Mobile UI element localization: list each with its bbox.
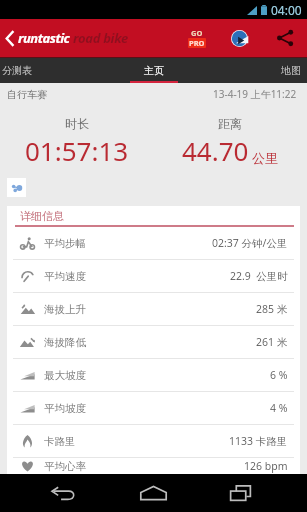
button[interactable]: Share [272,25,298,51]
staticText: 4 % [270,401,288,415]
staticText: 时长 [65,116,89,131]
staticText: 22.9 公里时 [230,269,288,283]
button[interactable]: Home [131,474,175,512]
staticText: GO [191,28,203,38]
staticText: 04:00 [271,2,302,18]
staticText: 平均步幅 [44,237,86,250]
staticText: 6 % [270,368,288,382]
button[interactable]: 平均坡度 [7,392,300,424]
button[interactable]: 卡路里 [7,425,300,457]
button[interactable]: 海拔降低 [7,326,300,358]
staticText: 分测表 [2,64,32,77]
staticText: 平均速度 [44,270,86,283]
button[interactable]: Share activity [7,178,26,197]
staticText: road bike [73,29,128,47]
button[interactable]: 平均速度 [7,260,300,292]
button[interactable]: 平均步幅 [7,227,300,259]
staticText: 最大坡度 [44,369,86,382]
button[interactable]: 分测表 [0,57,85,83]
staticText: 详细信息 [20,209,64,223]
staticText: 海拔降低 [44,336,86,349]
button[interactable]: Back [41,474,85,512]
staticText: 海拔上升 [44,303,86,316]
button[interactable]: 最大坡度 [7,359,300,391]
staticText: 02:37 分钟/公里 [212,236,288,250]
button[interactable]: Runtastic logo [226,25,252,51]
staticText: 平均坡度 [44,402,86,415]
staticText: 13-4-19 上午11:22 [213,87,297,101]
button[interactable]: 海拔上升 [7,293,300,325]
staticText: 01:57:13 [25,133,129,168]
button[interactable]: Recents [218,474,262,512]
staticText: 261 米 [256,335,288,349]
staticText: 平均心率 [44,460,86,473]
staticText: 距离 [218,116,242,131]
staticText: 285 米 [256,302,288,316]
staticText: 44.70 [182,133,249,168]
staticText: 公里 [252,150,278,166]
staticText: PRO [189,38,205,48]
button[interactable]: 平均心率 [7,458,300,474]
button[interactable]: Go Pro [186,28,208,48]
button[interactable]: 主页 [85,57,222,83]
staticText: 主页 [144,64,164,77]
staticText: 地图 [281,64,301,77]
staticText: runtastic [18,29,70,47]
staticText: 1133 卡路里 [229,434,288,448]
button[interactable]: Back [0,19,18,57]
staticText: 126 bpm [244,459,288,473]
staticText: 卡路里 [44,435,76,448]
staticText: 自行车赛 [7,88,47,101]
button[interactable]: 地图 [222,57,307,83]
